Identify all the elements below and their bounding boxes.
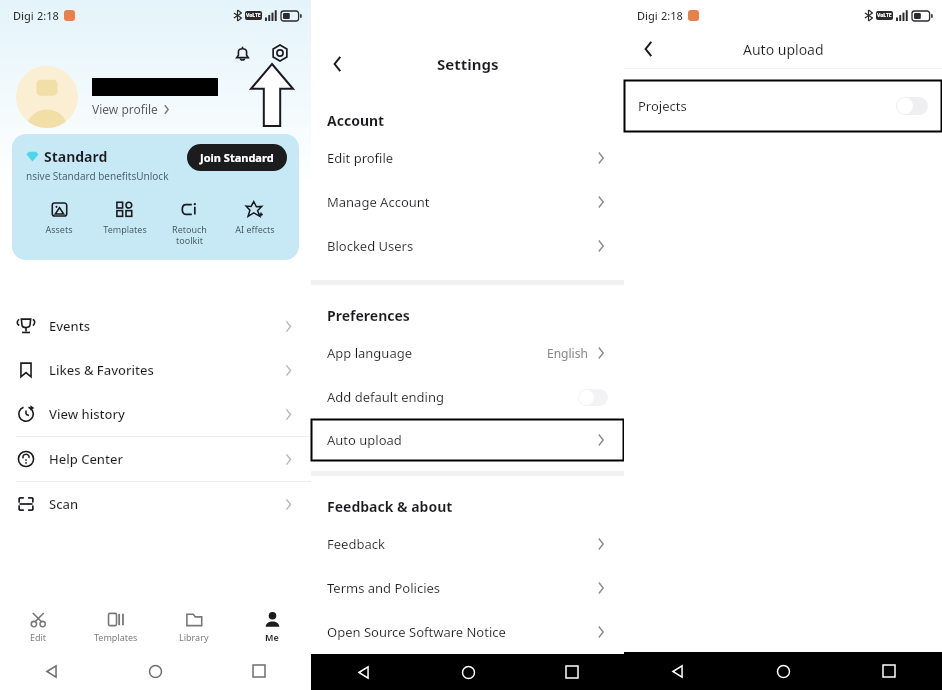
button[interactable]: Home [103,652,207,690]
button[interactable]: Recents [207,652,311,690]
button[interactable]: Help Center [0,437,311,481]
button[interactable]: Assets [26,200,92,235]
button[interactable]: Home [416,654,520,690]
button[interactable]: Join Standard [187,144,287,171]
staticText: AI effects [235,223,275,235]
button[interactable]: Back [319,47,353,81]
staticText: 2:18 [661,8,683,23]
button[interactable]: AI effects [222,200,287,235]
staticText: Assets [45,223,73,235]
button[interactable]: Projects [624,80,942,132]
staticText: VoLTE [246,12,261,19]
staticText: Events [49,317,91,335]
button[interactable]: Blocked Users [311,224,624,268]
staticText: Edit [30,631,47,643]
staticText: Auto upload [743,40,824,59]
button[interactable]: Notifications [225,36,259,70]
staticText: Terms and Policies [327,579,441,597]
button[interactable]: Recents [520,654,624,690]
staticText: Scan [49,495,79,513]
button[interactable]: Back [311,654,416,690]
staticText: App language [327,344,413,362]
button[interactable]: Home [730,652,836,690]
staticText: View history [49,405,125,423]
staticText: English [547,345,588,361]
staticText: View profile [92,101,158,117]
staticText: Edit profile [327,149,394,167]
staticText: Me [265,631,279,643]
staticText: Standard [44,147,108,166]
button[interactable]: Templates [77,600,155,652]
button[interactable]: Library [155,600,233,652]
button[interactable]: Likes & Favorites [0,348,311,392]
staticText: Help Center [49,450,123,468]
staticText: Account [327,111,385,130]
staticText: VoLTE [877,12,892,19]
button[interactable]: Edit [0,600,77,652]
staticText: Library [179,631,209,643]
staticText: Open Source Software Notice [327,623,506,641]
button[interactable]: Retouch toolkit [157,200,222,246]
staticText: Manage Account [327,193,430,211]
button[interactable]: Manage Account [311,180,624,224]
button[interactable]: Templates [92,200,157,235]
staticText: Digi [13,8,34,23]
button[interactable]: Terms and Policies [311,566,624,610]
button[interactable]: Me [233,600,311,652]
button[interactable]: Standard [12,134,299,260]
button[interactable]: Back [0,652,103,690]
button[interactable]: View profile [92,101,172,117]
staticText: Templates [94,631,138,643]
button[interactable]: Add default ending [311,375,624,419]
staticText: Blocked Users [327,237,414,255]
button[interactable]: App language [311,331,624,375]
staticText: Feedback [327,535,385,553]
staticText: nsive Standard benefitsUnlock [26,169,172,183]
button[interactable]: Back [624,652,730,690]
staticText: Settings [437,54,499,74]
staticText: Retouch toolkit [172,223,207,246]
staticText: Auto upload [327,431,402,449]
button[interactable]: Recents [836,652,942,690]
button[interactable]: Back [630,32,664,66]
staticText: Digi [637,8,658,23]
staticText: Preferences [327,306,410,325]
staticText: Projects [638,97,687,115]
button[interactable]: Avatar [16,66,78,128]
button[interactable]: Settings [263,36,297,70]
button[interactable]: Open Source Software Notice [311,610,624,654]
staticText: Add default ending [327,388,444,406]
button[interactable]: Edit profile [311,136,624,180]
staticText: Feedback & about [327,497,453,516]
button[interactable]: Auto upload [311,419,624,461]
staticText: Likes & Favorites [49,361,154,379]
staticText: Join Standard [200,150,274,165]
button[interactable]: Feedback [311,522,624,566]
staticText: 2:18 [37,8,59,23]
button[interactable]: Events [0,304,311,348]
button[interactable]: View history [0,392,311,436]
staticText: Templates [103,223,147,235]
button[interactable]: Scan [0,482,311,526]
